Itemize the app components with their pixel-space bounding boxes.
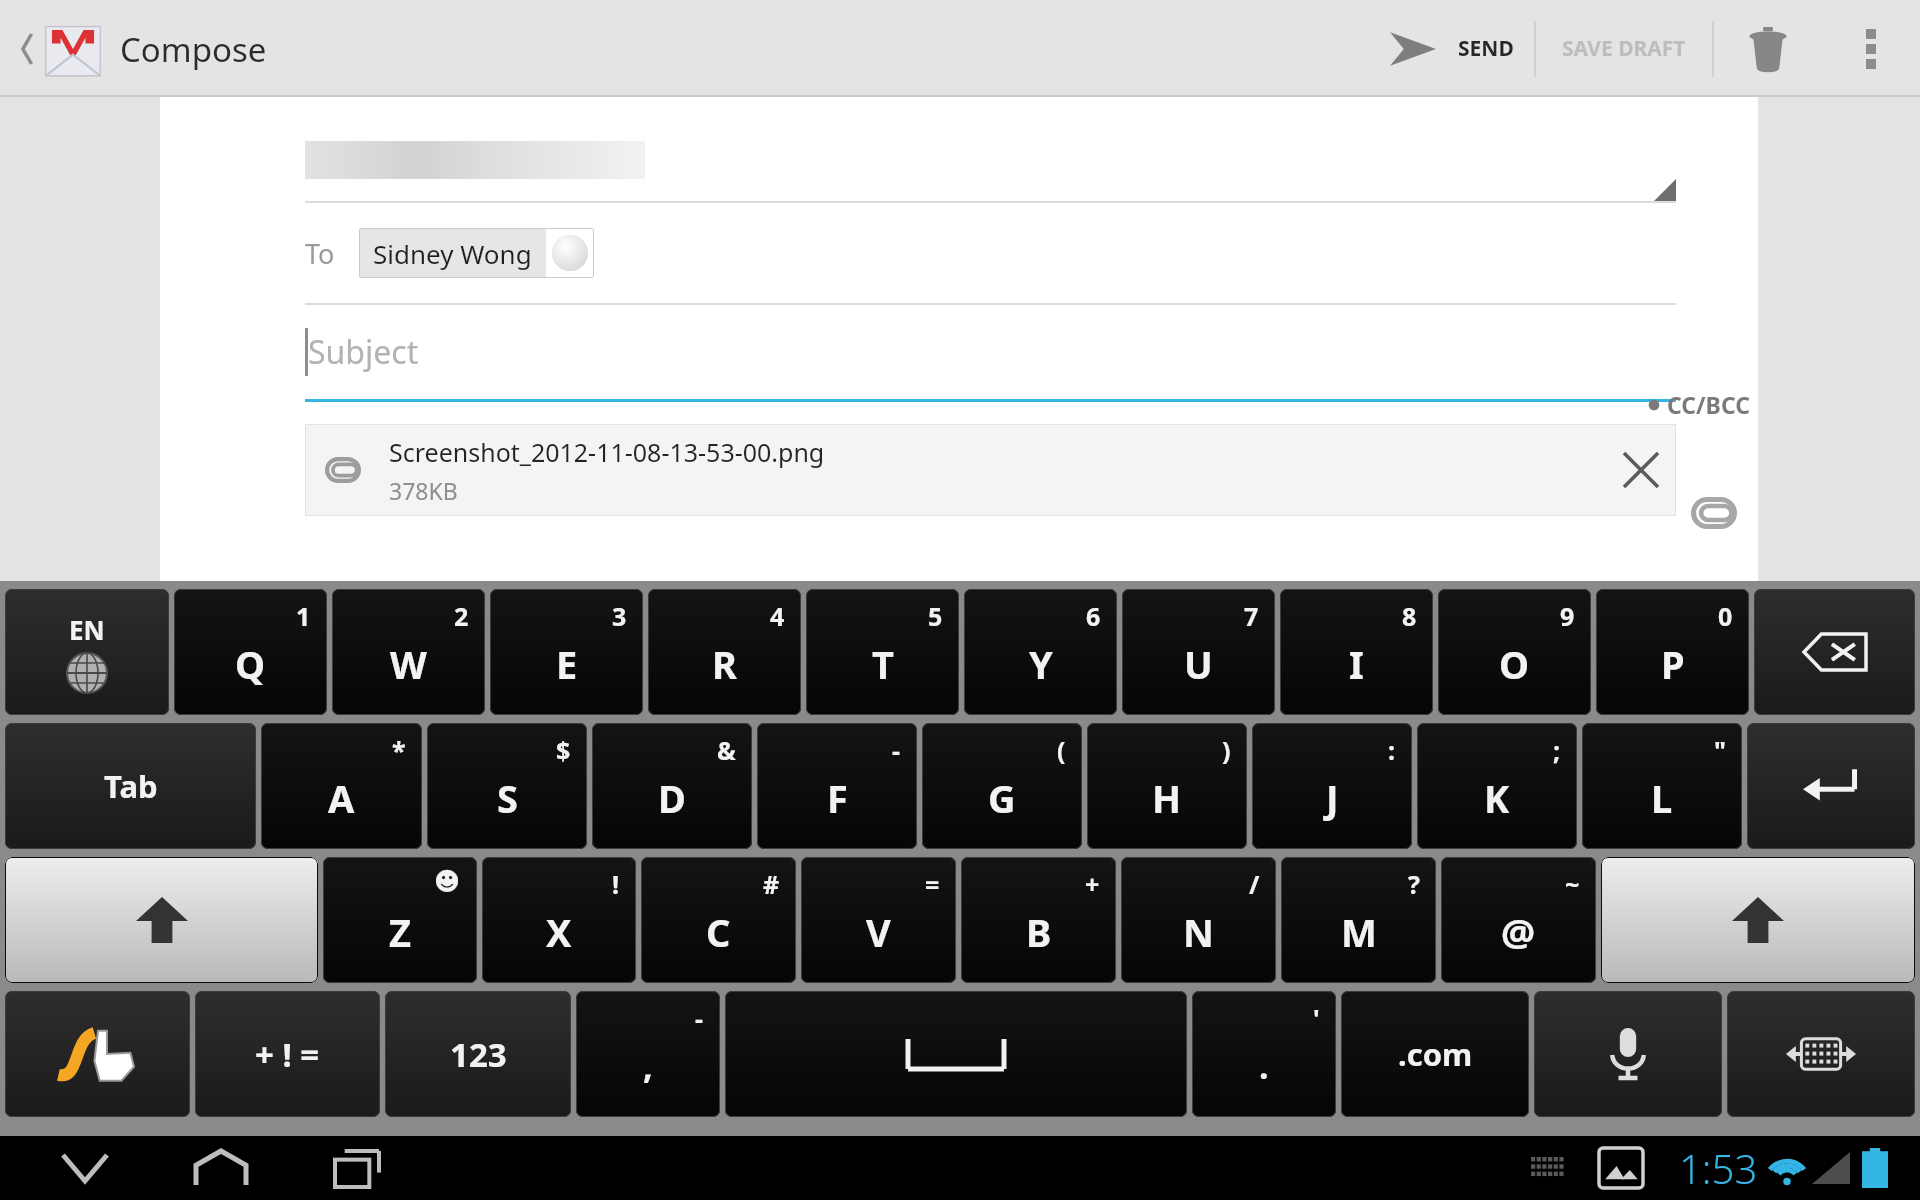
- button[interactable]: CC/BCC: [1639, 381, 1758, 428]
- staticText: Sidney Wong: [373, 236, 532, 271]
- staticText: 3: [612, 599, 627, 633]
- button[interactable]: [725, 991, 1187, 1117]
- button[interactable]: More options: [1822, 0, 1920, 97]
- staticText: *: [392, 733, 406, 767]
- button[interactable]: Sidney Wong: [359, 228, 594, 278]
- button[interactable]: 123: [385, 991, 571, 1117]
- staticText: + ! =: [255, 1032, 320, 1077]
- staticText: $: [556, 733, 571, 767]
- staticText: CC/BCC: [1667, 389, 1750, 420]
- staticText: 7: [1244, 599, 1259, 633]
- button[interactable]: ☻: [323, 857, 477, 983]
- button[interactable]: EN: [5, 589, 169, 715]
- staticText: S: [497, 772, 518, 824]
- staticText: P: [1661, 638, 1685, 690]
- button[interactable]: 0: [1596, 589, 1749, 715]
- button[interactable]: ': [1192, 991, 1336, 1117]
- button[interactable]: /: [1121, 857, 1276, 983]
- staticText: ☻: [434, 867, 461, 896]
- staticText: 378KB: [389, 475, 458, 506]
- button[interactable]: #: [641, 857, 796, 983]
- button[interactable]: [5, 991, 190, 1117]
- button[interactable]: ;: [1417, 723, 1577, 849]
- staticText: Compose: [120, 27, 267, 72]
- button[interactable]: $: [427, 723, 587, 849]
- staticText: 1: [296, 599, 311, 633]
- button[interactable]: -: [757, 723, 917, 849]
- button[interactable]: :: [1252, 723, 1412, 849]
- staticText: =: [925, 867, 940, 901]
- staticText: ,: [643, 1043, 653, 1089]
- button[interactable]: Recent apps: [320, 1140, 394, 1196]
- button[interactable]: [1747, 723, 1915, 849]
- staticText: L: [1651, 772, 1673, 824]
- staticText: 9: [1560, 599, 1575, 633]
- button[interactable]: 6: [964, 589, 1117, 715]
- button[interactable]: 1: [174, 589, 327, 715]
- staticText: EN: [69, 612, 105, 647]
- staticText: C: [706, 906, 731, 958]
- button[interactable]: .com: [1341, 991, 1529, 1117]
- button[interactable]: !: [482, 857, 636, 983]
- staticText: G: [988, 772, 1016, 824]
- button[interactable]: *: [261, 723, 422, 849]
- staticText: K: [1484, 772, 1510, 824]
- button[interactable]: 4: [648, 589, 801, 715]
- staticText: N: [1183, 906, 1214, 958]
- staticText: 5: [928, 599, 943, 633]
- staticText: T: [872, 638, 894, 690]
- button[interactable]: ): [1087, 723, 1247, 849]
- button[interactable]: [1754, 589, 1915, 715]
- button[interactable]: -: [576, 991, 720, 1117]
- button[interactable]: [1601, 857, 1915, 983]
- button[interactable]: Home: [184, 1140, 258, 1196]
- staticText: H: [1152, 772, 1182, 824]
- staticText: Y: [1029, 638, 1053, 690]
- button[interactable]: + ! =: [195, 991, 380, 1117]
- staticText: ?: [1408, 867, 1420, 901]
- staticText: Subject: [308, 330, 419, 374]
- staticText: @: [1501, 906, 1536, 958]
- button[interactable]: 3: [490, 589, 643, 715]
- button[interactable]: ?: [1281, 857, 1436, 983]
- button[interactable]: [1534, 991, 1722, 1117]
- button[interactable]: 8: [1280, 589, 1433, 715]
- staticText: !: [612, 867, 620, 901]
- button[interactable]: [5, 857, 318, 983]
- button[interactable]: 5: [806, 589, 959, 715]
- button[interactable]: Subject: [305, 305, 1676, 399]
- staticText: J: [1326, 772, 1339, 824]
- staticText: &: [717, 733, 736, 767]
- button[interactable]: &: [592, 723, 752, 849]
- staticText: Tab: [104, 765, 158, 807]
- staticText: W: [390, 638, 427, 690]
- button[interactable]: Tab: [5, 723, 256, 849]
- button[interactable]: Back: [48, 1140, 122, 1196]
- button[interactable]: Remove attachment: [1606, 435, 1676, 505]
- staticText: ": [1714, 733, 1726, 767]
- button[interactable]: SEND: [1370, 0, 1534, 97]
- staticText: Z: [389, 906, 412, 958]
- button[interactable]: +: [961, 857, 1116, 983]
- button[interactable]: ": [1582, 723, 1742, 849]
- button[interactable]: =: [801, 857, 956, 983]
- button[interactable]: Compose: [14, 21, 273, 77]
- staticText: X: [546, 906, 572, 958]
- button[interactable]: (: [922, 723, 1082, 849]
- staticText: ): [1222, 733, 1231, 767]
- staticText: 123: [450, 1032, 507, 1077]
- staticText: ': [1313, 1001, 1320, 1035]
- button[interactable]: 2: [332, 589, 485, 715]
- button[interactable]: 9: [1438, 589, 1591, 715]
- button[interactable]: Screenshot_2012-11-08-13-53-00.png: [305, 424, 1676, 516]
- staticText: R: [712, 638, 737, 690]
- staticText: .: [1259, 1043, 1269, 1089]
- button[interactable]: Discard: [1714, 0, 1822, 97]
- staticText: 1:53: [1679, 1141, 1758, 1195]
- button[interactable]: 7: [1122, 589, 1275, 715]
- staticText: B: [1026, 906, 1052, 958]
- button[interactable]: [1727, 991, 1915, 1117]
- button[interactable]: SAVE DRAFT: [1536, 0, 1712, 97]
- button[interactable]: Attach file: [1678, 483, 1750, 543]
- button[interactable]: ~: [1441, 857, 1596, 983]
